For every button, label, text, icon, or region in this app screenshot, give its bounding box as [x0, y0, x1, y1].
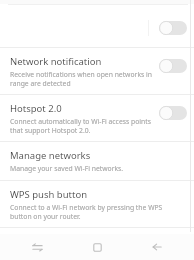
staticText: Receive notifications when open networks…: [10, 70, 155, 88]
button[interactable]: Network notification: [0, 48, 194, 94]
staticText: Hotspot 2.0: [10, 102, 62, 115]
staticText: Manage your saved Wi-Fi networks.: [10, 164, 124, 173]
staticText: Connect automatically to Wi-Fi access po…: [10, 117, 155, 135]
button[interactable]: Manage networks: [0, 142, 194, 180]
button[interactable]: WPS push button: [0, 181, 194, 227]
button[interactable]: Back: [134, 234, 180, 260]
button[interactable]: Hotspot 2.0: [0, 95, 194, 141]
button[interactable]: Recents: [14, 234, 60, 260]
staticText: Manage networks: [10, 149, 91, 162]
staticText: Network notification: [10, 55, 102, 68]
button[interactable]: Home: [74, 234, 120, 260]
staticText: Connect to a Wi-Fi network by pressing t…: [10, 203, 183, 221]
button[interactable]: [0, 5, 194, 47]
staticText: WPS push button: [10, 188, 88, 201]
